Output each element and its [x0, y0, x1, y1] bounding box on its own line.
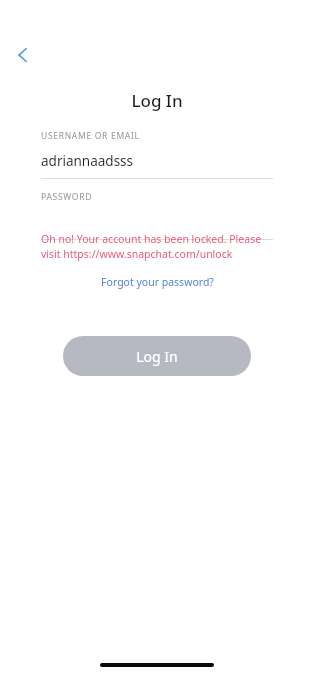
button[interactable]: adriannaadsss — [41, 150, 273, 172]
button[interactable]: Log In — [63, 336, 251, 376]
staticText: USERNAME OR EMAIL — [41, 130, 140, 142]
staticText: Log In — [136, 347, 178, 366]
button[interactable]: Forgot your password? — [93, 272, 222, 292]
staticText: Forgot your password? — [101, 275, 214, 289]
staticText: adriannaadsss — [41, 152, 134, 170]
button[interactable]: Back — [2, 34, 44, 76]
staticText: PASSWORD — [41, 191, 93, 203]
staticText: Oh no! Your account has been locked. Ple… — [41, 232, 273, 261]
staticText: Log In — [131, 89, 183, 112]
